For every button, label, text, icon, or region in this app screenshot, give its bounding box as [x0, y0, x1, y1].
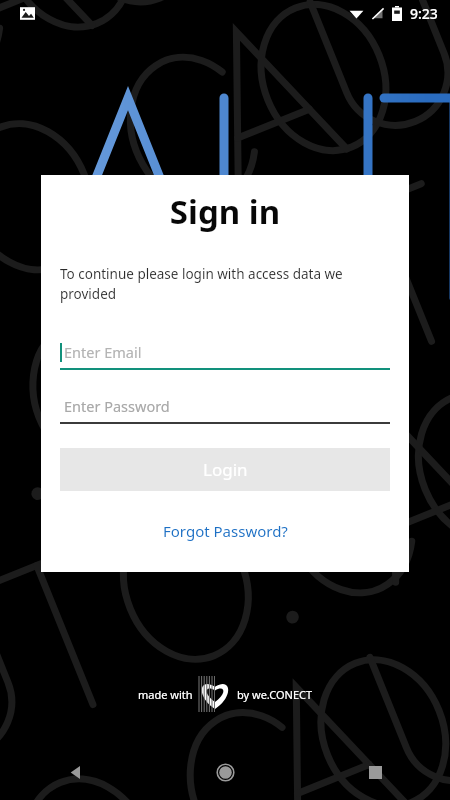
staticText: Enter Email: [64, 342, 142, 362]
button[interactable]: Back: [51, 748, 99, 796]
staticText: made with: [138, 687, 193, 702]
staticText: Login: [203, 458, 248, 481]
staticText: by we.CONECT: [237, 687, 313, 702]
staticText: Enter Password: [64, 396, 170, 416]
button[interactable]: Forgot Password?: [60, 521, 390, 541]
staticText: Forgot Password?: [163, 521, 288, 541]
button[interactable]: Enter Password: [60, 388, 390, 424]
button[interactable]: made with: [138, 676, 313, 712]
button[interactable]: Enter Email: [60, 334, 390, 370]
button[interactable]: Recent apps: [351, 748, 399, 796]
other: we.CONECT heart logo: [195, 676, 235, 712]
button[interactable]: Home: [201, 748, 249, 796]
staticText: 9:23: [410, 4, 438, 23]
staticText: To continue please login with access dat…: [60, 265, 390, 303]
staticText: Sign in: [60, 189, 390, 234]
